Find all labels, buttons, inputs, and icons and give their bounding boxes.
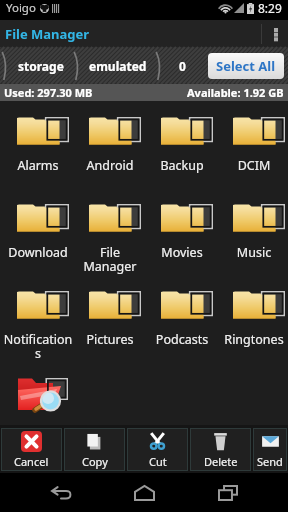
staticText: Yoigo	[6, 0, 36, 16]
button[interactable]: Alarms	[0, 116, 72, 203]
staticText: Backup	[147, 157, 217, 174]
button[interactable]: Music	[216, 203, 288, 290]
button[interactable]: File Manager	[72, 203, 144, 290]
button[interactable]: 0	[164, 47, 200, 84]
button[interactable]: Backup	[144, 116, 216, 203]
staticText: 8:29	[258, 0, 282, 16]
staticText: Android	[75, 157, 145, 174]
staticText: Ringtones	[219, 331, 288, 348]
button[interactable]: Notifications	[0, 290, 72, 377]
button[interactable]: Copy	[64, 428, 125, 471]
button[interactable]: Send	[253, 428, 287, 471]
staticText: File Manager	[75, 244, 145, 274]
staticText: Delete	[204, 454, 238, 469]
staticText: Podcasts	[147, 331, 217, 348]
button[interactable]: DCIM	[216, 116, 288, 203]
staticText: Send	[257, 454, 283, 469]
button[interactable]: Back	[36, 473, 84, 512]
staticText: emulated	[89, 58, 147, 74]
staticText: Copy	[82, 454, 108, 469]
button[interactable]: Select All	[208, 53, 284, 79]
button[interactable]: Cut	[127, 428, 188, 471]
button[interactable]: Recents	[204, 473, 252, 512]
button[interactable]: emulated	[82, 47, 154, 84]
button[interactable]: Movies	[144, 203, 216, 290]
staticText: Movies	[147, 244, 217, 261]
button[interactable]: Delete	[190, 428, 251, 471]
staticText: Music	[219, 244, 288, 261]
staticText: Alarms	[3, 157, 73, 174]
staticText: Used: 297.30 MB	[4, 85, 93, 100]
staticText: Notifications	[3, 331, 73, 361]
button[interactable]: Search	[0, 377, 72, 417]
staticText: storage	[18, 58, 64, 74]
button[interactable]: Ringtones	[216, 290, 288, 377]
staticText: File Manager	[5, 25, 90, 43]
button[interactable]: storage	[10, 47, 72, 84]
staticText: 0	[179, 58, 186, 74]
staticText: DCIM	[219, 157, 288, 174]
button[interactable]: More options	[264, 20, 288, 47]
button[interactable]: Cancel	[1, 428, 62, 471]
button[interactable]: Podcasts	[144, 290, 216, 377]
staticText: Download	[3, 244, 73, 261]
button[interactable]: Download	[0, 203, 72, 290]
button[interactable]: Home	[120, 473, 168, 512]
staticText: Cut	[149, 454, 167, 469]
button[interactable]: Android	[72, 116, 144, 203]
staticText: Cancel	[14, 454, 49, 469]
staticText: Available: 1.92 GB	[187, 85, 284, 100]
staticText: Select All	[216, 57, 276, 75]
staticText: Pictures	[75, 331, 145, 348]
button[interactable]: Pictures	[72, 290, 144, 377]
